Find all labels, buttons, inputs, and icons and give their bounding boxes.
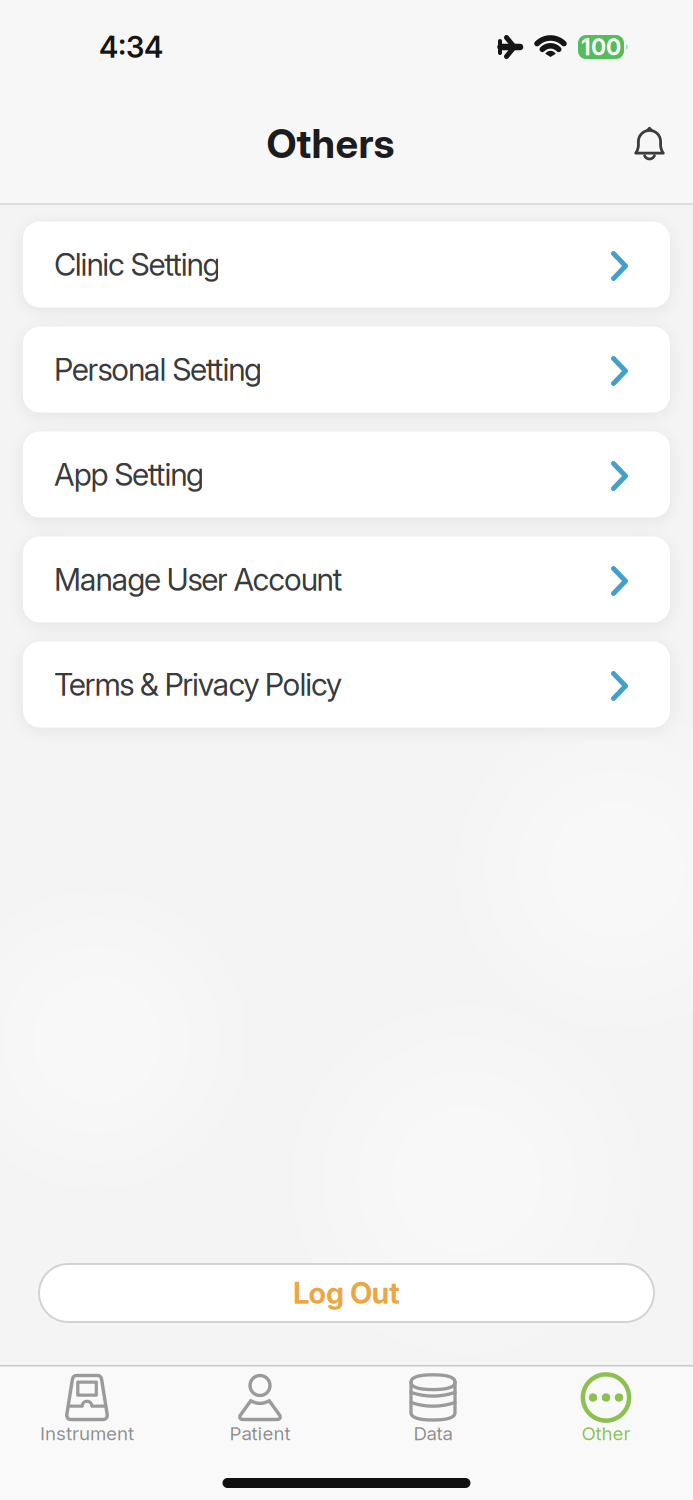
staticText: Patient bbox=[229, 1422, 290, 1444]
button[interactable]: App Setting bbox=[23, 431, 670, 517]
button[interactable]: Log Out bbox=[38, 1263, 655, 1323]
staticText: 4:34 bbox=[99, 30, 163, 64]
staticText: Manage User Account bbox=[54, 561, 342, 598]
staticText: 100 bbox=[581, 34, 621, 60]
button[interactable]: Personal Setting bbox=[23, 326, 670, 412]
button[interactable]: Clinic Setting bbox=[23, 221, 670, 307]
staticText: Log Out bbox=[293, 1276, 400, 1310]
staticText: Terms & Privacy Policy bbox=[54, 666, 342, 703]
staticText: Other bbox=[581, 1422, 630, 1444]
staticText: Others bbox=[266, 120, 394, 167]
staticText: App Setting bbox=[54, 456, 204, 493]
staticText: Clinic Setting bbox=[54, 246, 220, 283]
button[interactable]: Other bbox=[519, 1372, 692, 1499]
button[interactable]: Manage User Account bbox=[23, 536, 670, 622]
staticText: Instrument bbox=[40, 1422, 134, 1444]
staticText: Data bbox=[413, 1422, 452, 1444]
button[interactable]: Terms & Privacy Policy bbox=[23, 641, 670, 727]
button[interactable]: Notifications bbox=[635, 126, 664, 160]
staticText: Personal Setting bbox=[54, 351, 262, 388]
button[interactable]: Data bbox=[346, 1372, 519, 1499]
button[interactable]: Patient bbox=[173, 1372, 346, 1499]
button[interactable]: Instrument bbox=[0, 1372, 173, 1499]
